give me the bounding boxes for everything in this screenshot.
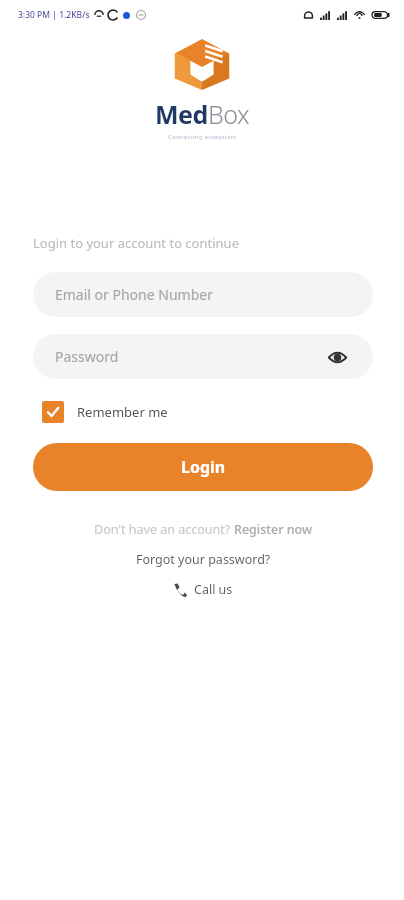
staticText: Med	[155, 97, 208, 131]
staticText: Password	[55, 347, 119, 366]
staticText: Register now	[234, 521, 313, 538]
button[interactable]: Forgot your password?	[136, 551, 271, 568]
staticText: 3:30 PM | 1.2KB/s	[18, 9, 90, 21]
button[interactable]: Remember me	[33, 401, 168, 423]
button[interactable]: Don't have an account?	[33, 521, 373, 538]
button[interactable]: Show password	[323, 343, 351, 371]
staticText: Box	[208, 97, 250, 131]
button[interactable]: Call us	[33, 581, 373, 598]
button[interactable]: Email or Phone Number	[33, 272, 373, 317]
button[interactable]: Password	[33, 334, 373, 379]
staticText: Call us	[194, 581, 233, 598]
staticText: Don't have an account?	[94, 521, 234, 538]
staticText: Login	[181, 456, 226, 478]
staticText: Login to your account to continue	[33, 234, 239, 252]
staticText: Remember me	[77, 403, 168, 421]
button[interactable]: Login	[33, 443, 373, 491]
staticText: Email or Phone Number	[55, 285, 213, 304]
staticText: Connecting ecosystem	[168, 133, 237, 140]
